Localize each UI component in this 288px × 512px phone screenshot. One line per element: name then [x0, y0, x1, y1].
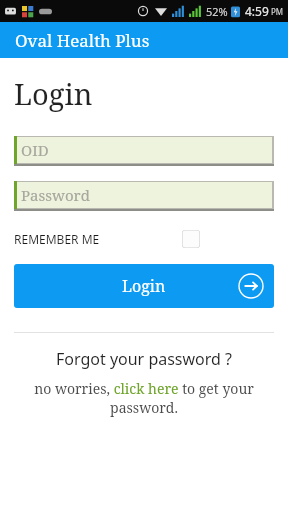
staticText: 52%	[206, 4, 228, 19]
staticText: Oval Health Plus	[15, 29, 150, 52]
staticText: Login	[14, 74, 93, 113]
button[interactable]: Login	[14, 264, 274, 308]
staticText: Password	[21, 185, 90, 205]
staticText: 4:59	[245, 3, 269, 19]
staticText: REMEMBER ME	[14, 231, 100, 247]
staticText: OID	[21, 140, 49, 160]
staticText: Login	[122, 275, 166, 297]
button[interactable]: no worries, click here to get your passw…	[26, 379, 262, 417]
button[interactable]: REMEMBER ME	[14, 228, 274, 250]
staticText: PM	[271, 6, 284, 17]
staticText: no worries, click here to get your passw…	[26, 379, 262, 417]
button[interactable]: OID	[14, 136, 274, 166]
staticText: Forgot your password ?	[0, 348, 288, 370]
other: Submit login	[238, 273, 264, 299]
button[interactable]: Password	[14, 181, 274, 211]
